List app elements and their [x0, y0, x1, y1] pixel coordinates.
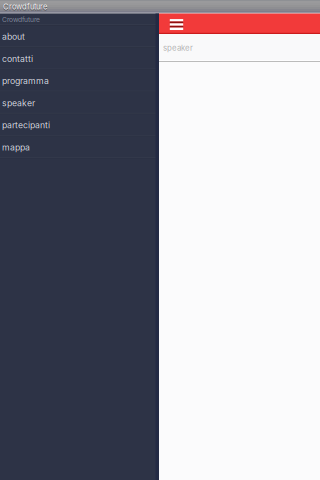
button[interactable]: partecipanti — [0, 114, 159, 136]
staticText: speaker — [163, 43, 193, 53]
button[interactable]: speaker — [0, 92, 159, 114]
button[interactable]: about — [0, 26, 159, 48]
staticText: programma — [2, 76, 49, 86]
staticText: speaker — [2, 98, 35, 108]
staticText: partecipanti — [2, 120, 50, 130]
staticText: Crowdfuture — [3, 3, 47, 12]
button[interactable]: mappa — [0, 136, 159, 158]
staticText: mappa — [2, 142, 30, 153]
button[interactable]: Open menu — [170, 13, 183, 34]
button[interactable]: contatti — [0, 48, 159, 70]
staticText: contatti — [2, 54, 33, 64]
staticText: Crowdfuture — [2, 15, 40, 24]
button[interactable]: programma — [0, 70, 159, 92]
staticText: Crowdfuture — [3, 2, 47, 11]
staticText: about — [2, 31, 25, 42]
